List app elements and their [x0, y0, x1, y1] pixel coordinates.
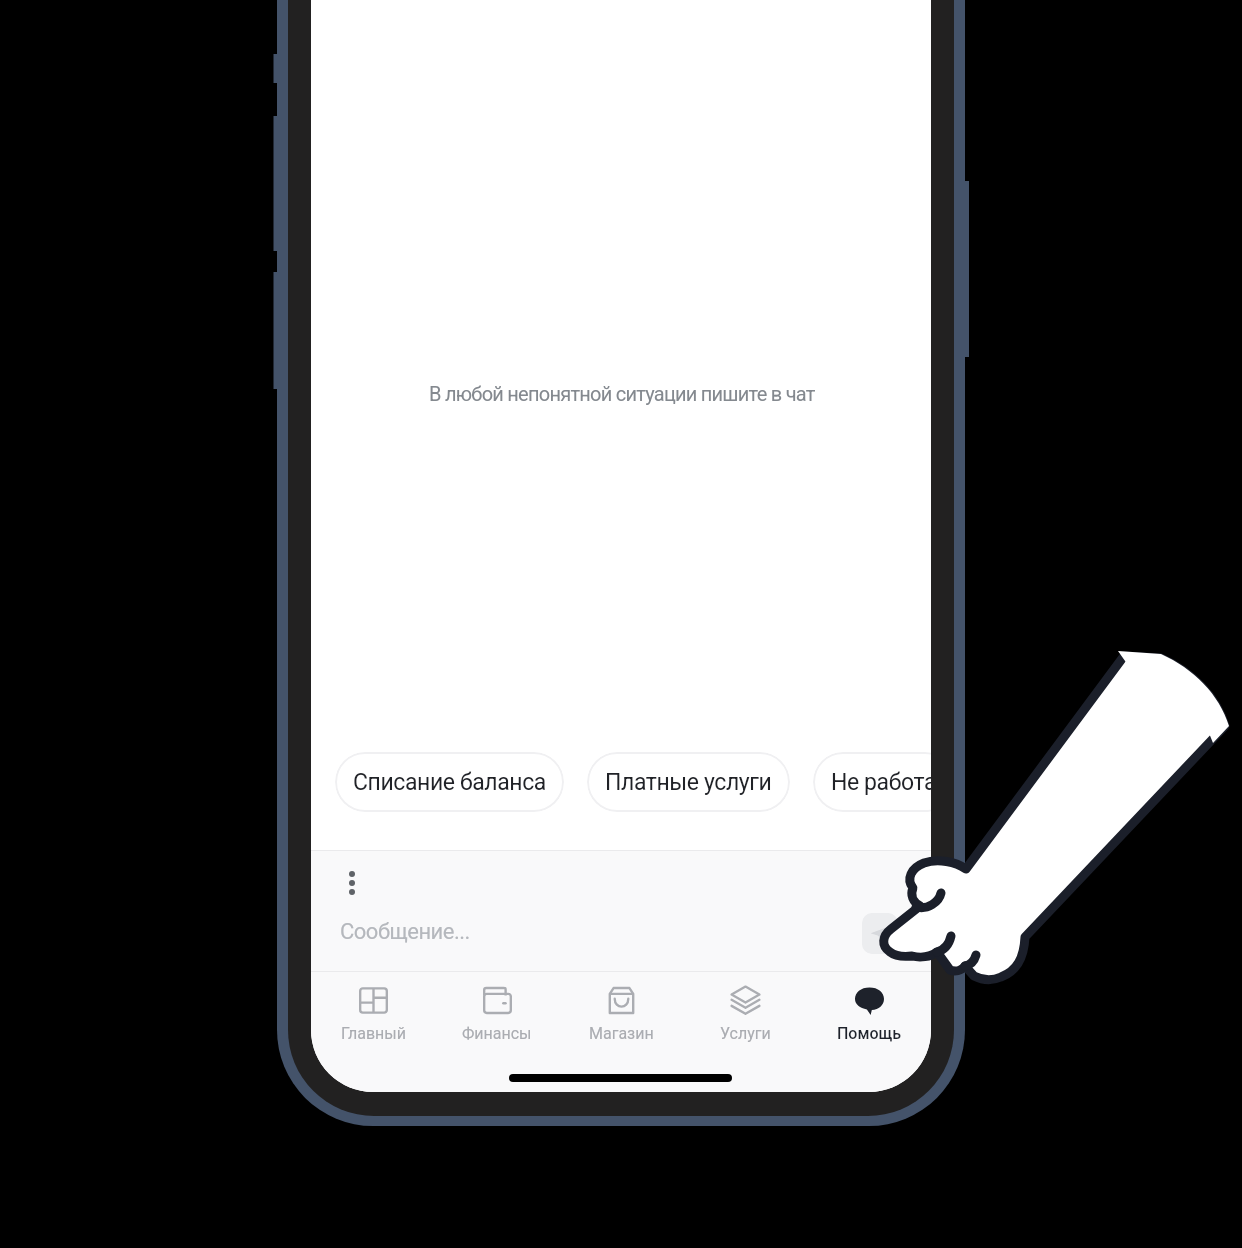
- button[interactable]: Помощь: [807, 984, 931, 1043]
- button[interactable]: Главный: [311, 984, 435, 1043]
- button[interactable]: Send: [862, 913, 898, 954]
- button[interactable]: Финансы: [435, 984, 559, 1043]
- staticText: Финансы: [462, 1024, 532, 1043]
- staticText: Не работает: [831, 769, 931, 796]
- staticText: Списание баланса: [353, 769, 546, 796]
- staticText: Помощь: [837, 1024, 902, 1043]
- staticText: Магазин: [589, 1024, 654, 1043]
- staticText: В любой непонятной ситуации пишите в чат: [429, 382, 815, 405]
- button[interactable]: Не работает: [813, 752, 931, 812]
- button[interactable]: Магазин: [559, 984, 683, 1043]
- staticText: Главный: [341, 1024, 406, 1043]
- button[interactable]: Услуги: [683, 984, 807, 1043]
- staticText: Платные услуги: [605, 769, 772, 796]
- button[interactable]: More options: [332, 852, 372, 914]
- staticText: Сообщение...: [340, 919, 470, 945]
- button[interactable]: Списание баланса: [335, 752, 564, 812]
- button[interactable]: Платные услуги: [587, 752, 790, 812]
- staticText: Услуги: [720, 1024, 771, 1043]
